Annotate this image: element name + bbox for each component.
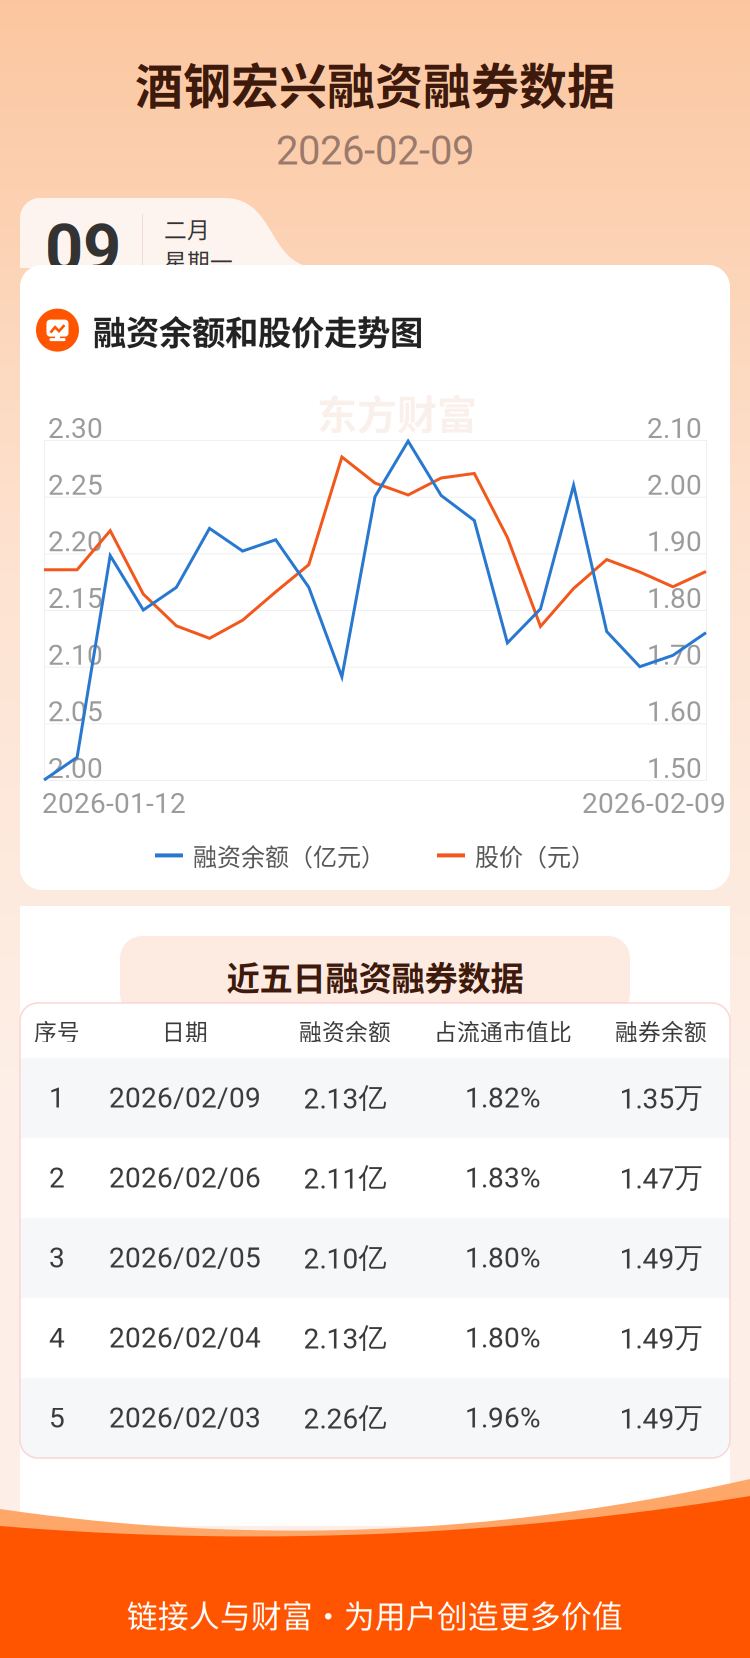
staticText: 1.80 <box>647 582 702 615</box>
staticText: 2026-01-12 <box>42 787 186 820</box>
staticText: 2.10亿 <box>303 1240 386 1276</box>
staticText: 1.60 <box>647 695 702 728</box>
staticText: 2.05 <box>48 695 103 728</box>
staticText: 东方财富 <box>317 383 477 441</box>
staticText: 股价（元） <box>475 838 595 873</box>
staticText: 1.80% <box>465 1322 541 1354</box>
staticText: 1.90 <box>647 525 702 558</box>
staticText: 2.20 <box>48 525 103 558</box>
staticText: 1 <box>49 1082 65 1114</box>
staticText: 序号 <box>34 1014 80 1047</box>
staticText: 2.11亿 <box>303 1160 386 1196</box>
staticText: 近五日融资融券数据 <box>226 952 523 1000</box>
staticText: 2.10 <box>647 412 702 445</box>
staticText: 1.82% <box>465 1082 541 1114</box>
staticText: 2.13亿 <box>303 1080 386 1116</box>
staticText: 2.26亿 <box>303 1400 386 1436</box>
staticText: 酒钢宏兴融资融券数据 <box>135 48 615 117</box>
staticText: 2.15 <box>48 582 103 615</box>
staticText: 2026/02/09 <box>109 1082 261 1114</box>
staticText: 2026/02/06 <box>109 1162 261 1194</box>
staticText: 1.35万 <box>619 1080 702 1116</box>
staticText: 2026-02-09 <box>276 127 474 174</box>
staticText: 1.83% <box>465 1162 541 1194</box>
staticText: 2 <box>49 1162 65 1194</box>
staticText: 2.25 <box>48 469 103 501</box>
staticText: 日期 <box>162 1014 208 1047</box>
staticText: 2026/02/04 <box>109 1322 261 1354</box>
staticText: 融资余额和股价走势图 <box>93 306 423 354</box>
staticText: 2026-02-09 <box>582 787 726 820</box>
staticText: 2.30 <box>48 412 103 445</box>
staticText: 1.70 <box>647 639 702 671</box>
staticText: 3 <box>49 1242 65 1274</box>
staticText: 2026/02/03 <box>109 1402 261 1434</box>
staticText: 1.49万 <box>619 1400 702 1436</box>
staticText: 5 <box>49 1402 65 1434</box>
staticText: 1.80% <box>465 1242 541 1274</box>
staticText: 2026/02/05 <box>109 1242 261 1274</box>
staticText: 占流通市值比 <box>434 1014 572 1047</box>
staticText: 链接人与财富·为用户创造更多价值 <box>127 1592 623 1636</box>
staticText: 融资余额 <box>299 1014 391 1047</box>
staticText: 09 <box>45 210 121 288</box>
staticText: 1.47万 <box>619 1160 702 1196</box>
staticText: 2.10 <box>48 639 103 671</box>
staticText: 星期一 <box>164 244 233 277</box>
staticText: 4 <box>49 1322 65 1354</box>
staticText: 1.49万 <box>619 1320 702 1356</box>
staticText: 融资余额（亿元） <box>193 838 385 873</box>
staticText: 融券余额 <box>615 1014 707 1047</box>
staticText: 2.13亿 <box>303 1320 386 1356</box>
staticText: 2.00 <box>647 469 702 501</box>
staticText: 1.49万 <box>619 1240 702 1276</box>
staticText: 1.96% <box>465 1402 541 1434</box>
staticText: 1.50 <box>647 752 702 785</box>
staticText: 二月 <box>164 212 210 245</box>
staticText: 2.00 <box>48 752 103 785</box>
